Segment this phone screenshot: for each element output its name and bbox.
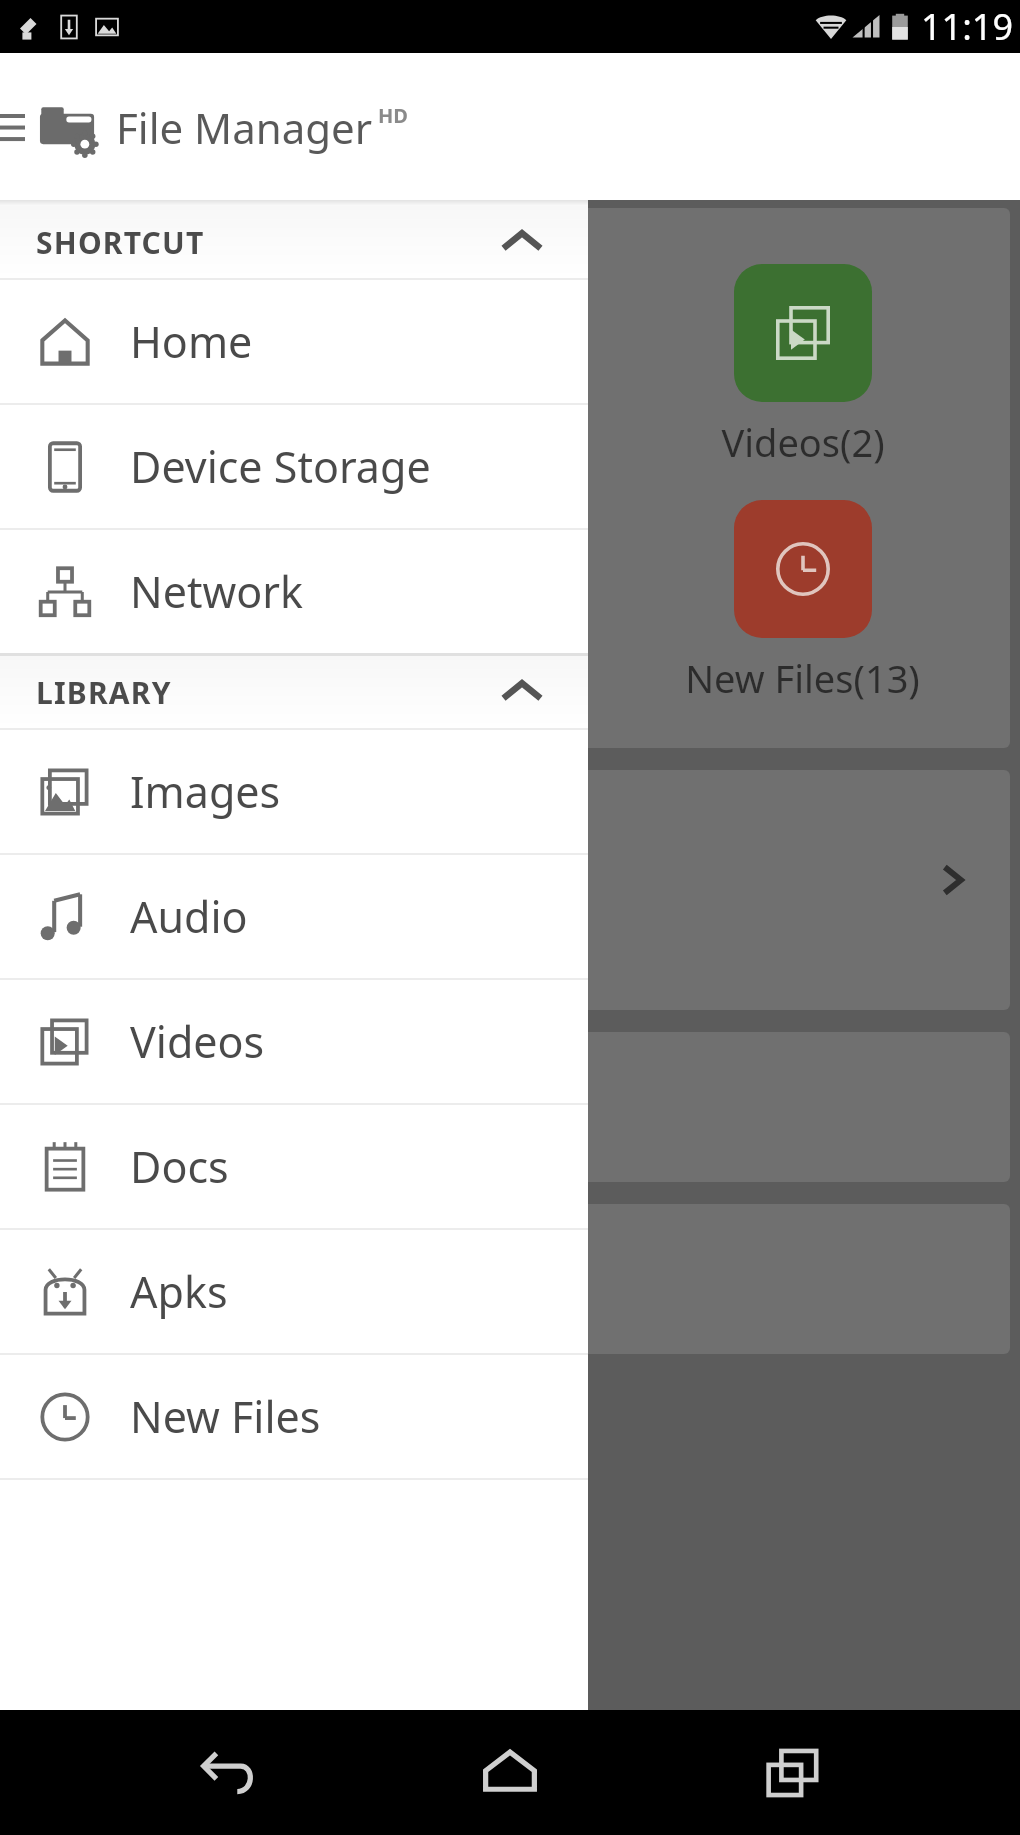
button[interactable]: Audio	[0, 855, 588, 978]
staticText: Audio	[130, 887, 248, 946]
staticText: Videos(2)	[721, 416, 885, 468]
staticText: New Files(13)	[685, 652, 920, 704]
staticText: New Files	[130, 1387, 321, 1446]
staticText: Videos	[130, 1012, 265, 1071]
button[interactable]: 12.55 GB	[10, 770, 1010, 1010]
button[interactable]: Home	[0, 280, 588, 403]
button[interactable]: LIBRARY	[0, 656, 588, 728]
button[interactable]: SHORTCUT	[0, 206, 588, 278]
button[interactable]: Images	[0, 730, 588, 853]
button[interactable]: Back	[173, 1718, 283, 1828]
staticText: Home	[130, 312, 253, 371]
staticText: Apks	[130, 1262, 228, 1321]
button[interactable]: Videos	[0, 980, 588, 1103]
staticText: Junk File	[30, 1080, 187, 1134]
button[interactable]: Junk File	[10, 1032, 1010, 1182]
staticText: LIBRARY	[36, 672, 172, 713]
button[interactable]: Downloads	[10, 1204, 1010, 1354]
button[interactable]: Videos(2)	[10, 208, 1010, 748]
button[interactable]: Device Storage	[0, 405, 588, 528]
button[interactable]	[734, 500, 872, 638]
staticText: SHORTCUT	[36, 222, 205, 263]
button[interactable]: Open navigation drawer	[0, 103, 34, 151]
staticText: Downloads	[30, 1252, 240, 1306]
staticText: HD	[378, 102, 408, 129]
button[interactable]: Apks	[0, 1230, 588, 1353]
staticText: 11:19	[921, 2, 1014, 51]
staticText: 12.55 GB	[60, 852, 228, 906]
button[interactable]: New Files	[0, 1355, 588, 1478]
staticText: File Manager	[116, 99, 373, 156]
button[interactable]: Docs	[0, 1105, 588, 1228]
staticText: Images	[130, 762, 281, 821]
button[interactable]: Home	[455, 1718, 565, 1828]
button[interactable]: Recent apps	[738, 1718, 848, 1828]
staticText: Docs	[130, 1137, 229, 1196]
staticText: Network	[130, 562, 303, 621]
staticText: Device Storage	[130, 437, 431, 496]
button[interactable]	[734, 264, 872, 402]
button[interactable]: Network	[0, 530, 588, 653]
